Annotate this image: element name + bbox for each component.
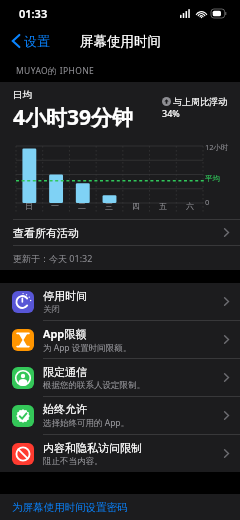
staticText: 日 — [25, 201, 33, 211]
button[interactable]: 查看所有活动 — [0, 220, 240, 245]
staticText: MUYAO的 IPHONE — [16, 65, 95, 77]
staticText: 01:33 — [19, 6, 48, 21]
button[interactable]: 始终允许 — [0, 397, 240, 434]
staticText: 限定通信 — [43, 365, 87, 379]
staticText: App限额 — [43, 326, 87, 341]
staticText: 更新于：今天 01:32 — [13, 252, 93, 264]
staticText: 选择始终可用的 App。 — [43, 417, 130, 429]
button[interactable]: App限额 — [0, 321, 240, 358]
staticText: 为屏幕使用时间设置密码 — [12, 501, 128, 514]
staticText: 0 — [205, 197, 210, 207]
staticText: 关闭 — [43, 304, 60, 315]
button[interactable]: 为屏幕使用时间设置密码 — [0, 494, 240, 520]
staticText: 查看所有活动 — [13, 226, 224, 240]
staticText: 停用时间 — [43, 289, 87, 303]
staticText: 阻止不当内容。 — [43, 456, 103, 467]
button[interactable]: 内容和隐私访问限制 — [0, 435, 240, 472]
staticText: 五 — [159, 201, 167, 211]
staticText: 日均 — [13, 89, 32, 101]
staticText: 设置 — [24, 33, 50, 49]
button[interactable]: 停用时间 — [0, 283, 240, 320]
staticText: 二 — [78, 201, 86, 211]
staticText: 屏幕使用时间 — [80, 33, 161, 50]
staticText: 根据您的联系人设定限制。 — [43, 380, 145, 391]
button[interactable]: 设置 — [8, 29, 54, 53]
staticText: 34% — [162, 107, 180, 119]
staticText: 与上周比浮动 — [173, 96, 227, 107]
staticText: 内容和隐私访问限制 — [43, 441, 142, 455]
staticText: 六 — [186, 201, 194, 211]
staticText: 四 — [132, 201, 140, 211]
staticText: 一 — [51, 201, 59, 211]
staticText: 4小时39分钟 — [13, 103, 134, 132]
staticText: 为 App 设置时间限额。 — [43, 342, 132, 354]
staticText: 始终允许 — [43, 402, 87, 416]
button[interactable]: 限定通信 — [0, 359, 240, 396]
staticText: 12小时 — [205, 142, 229, 152]
staticText: 三 — [105, 201, 113, 211]
staticText: 平均 — [205, 174, 220, 183]
